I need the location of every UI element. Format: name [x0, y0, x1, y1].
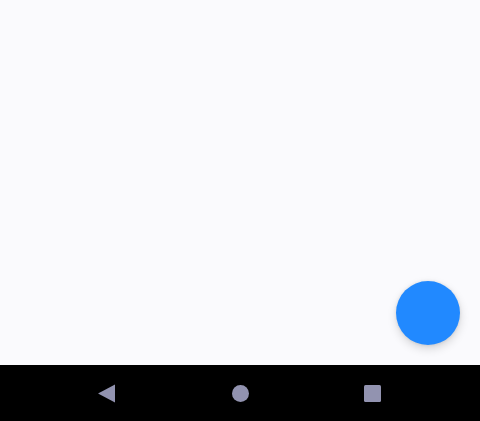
- button[interactable]: Add: [396, 281, 460, 345]
- button[interactable]: Home: [216, 369, 264, 417]
- button[interactable]: Back: [82, 369, 130, 417]
- button[interactable]: Recent apps: [348, 369, 396, 417]
